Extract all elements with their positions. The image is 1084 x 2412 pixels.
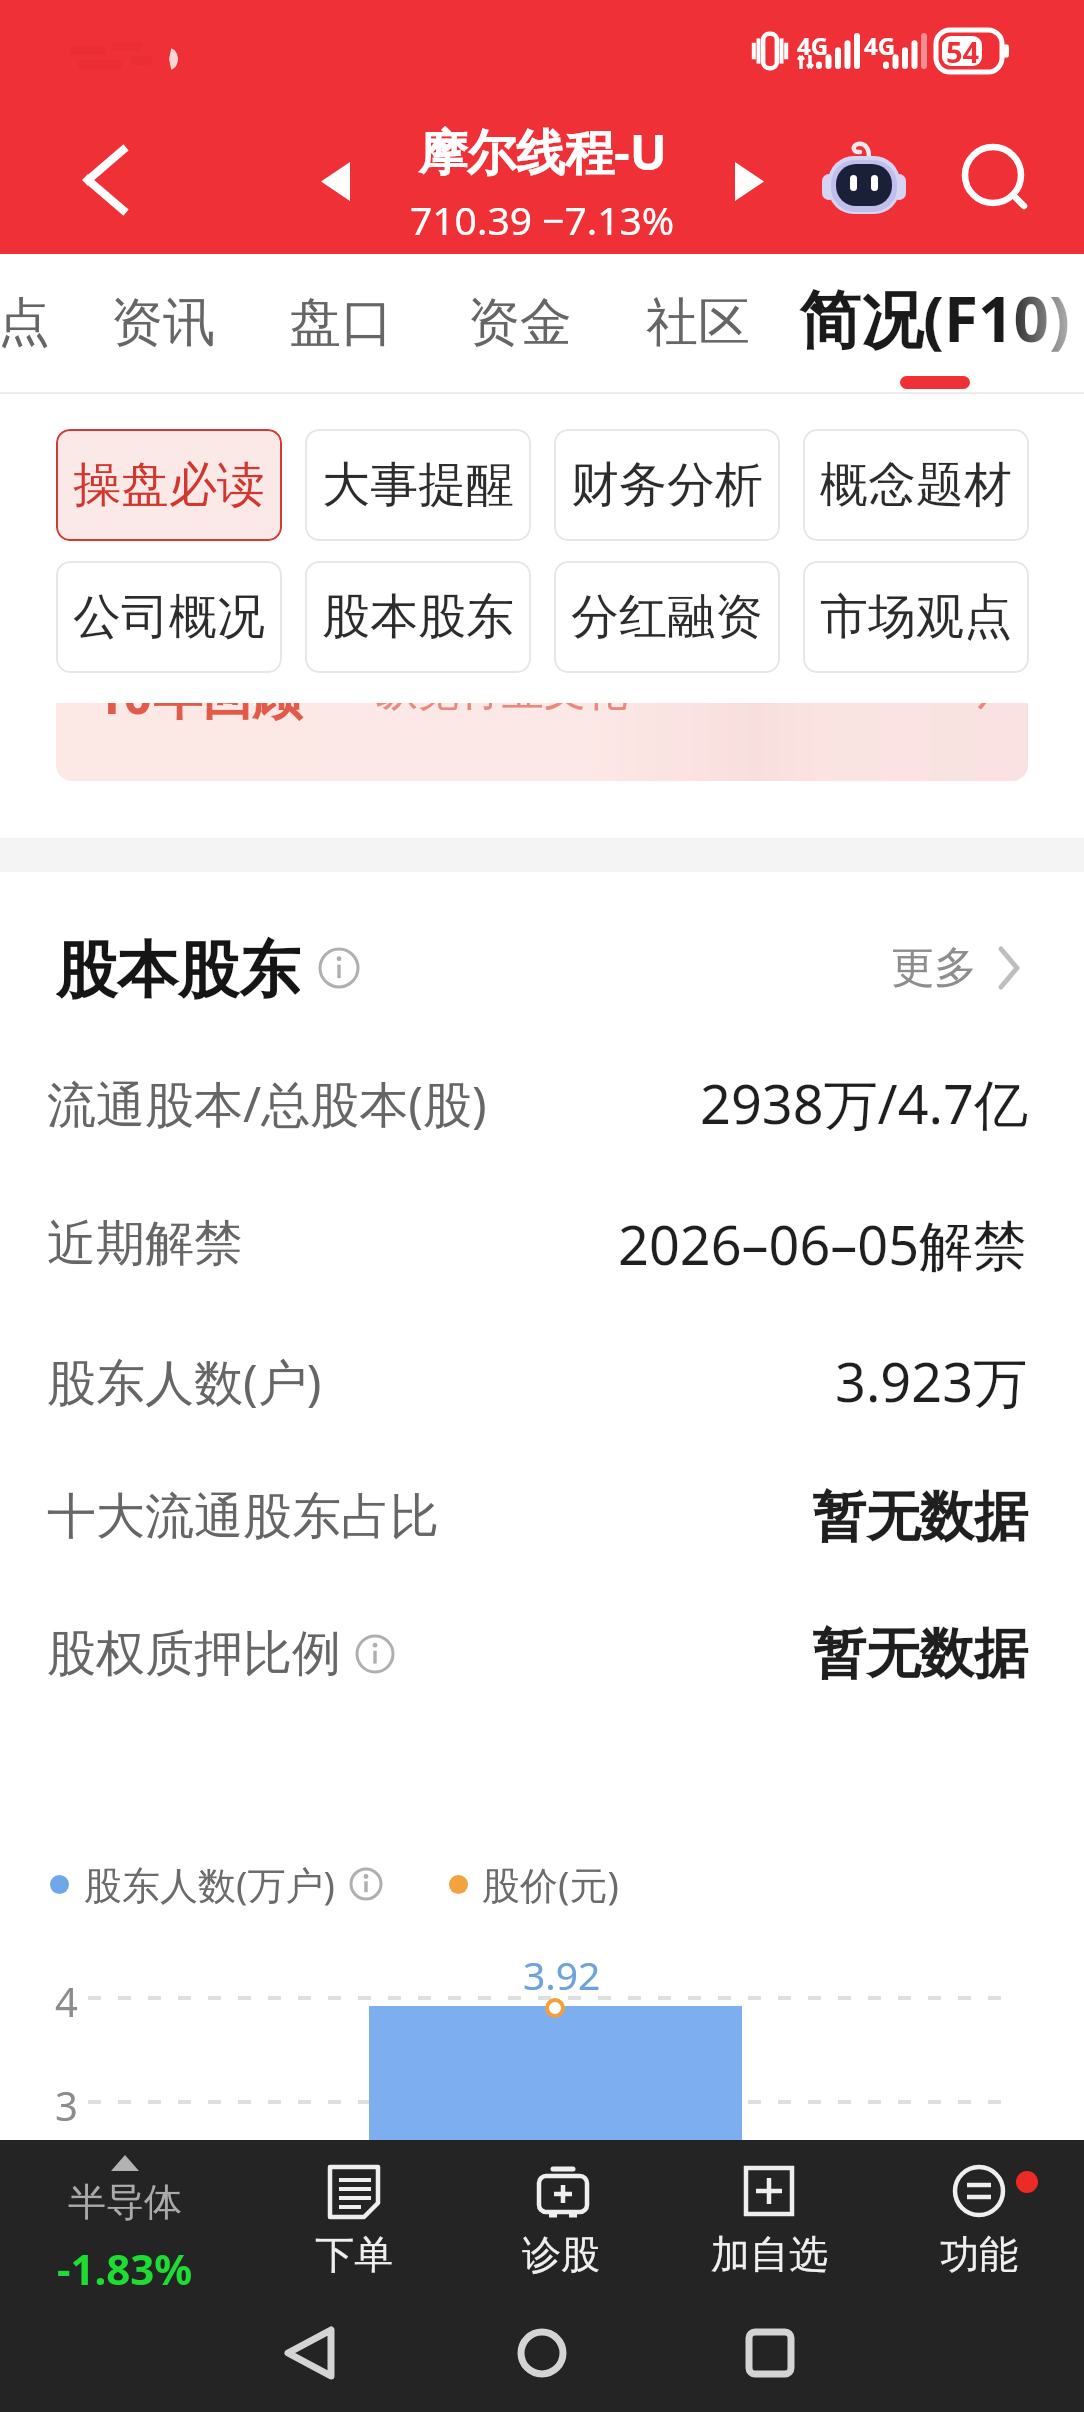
staticText: 10年回顾 <box>95 703 303 729</box>
staticText: 流通股本/总股本(股) <box>47 1070 487 1137</box>
button[interactable]: 10年回顾 <box>56 703 1028 781</box>
staticText: 股东人数(户) <box>47 1348 322 1415</box>
staticText: -1.83% <box>57 2240 193 2297</box>
staticText: 更多 <box>891 941 977 995</box>
staticText: 盘口 <box>289 290 393 356</box>
staticText: 710.39 −7.13% <box>410 193 675 246</box>
staticText: 2938万/4.7亿 <box>700 1066 1028 1140</box>
button[interactable]: 股本股东 <box>305 561 531 673</box>
staticText: 资金 <box>468 290 572 356</box>
staticText: 财务分析 <box>571 455 763 515</box>
staticText: 股本股东 <box>322 587 514 647</box>
button[interactable]: Next stock <box>699 131 799 231</box>
button[interactable]: 操盘必读 <box>56 429 282 541</box>
staticText: 十大流通股东占比 <box>47 1486 439 1548</box>
staticText: 资讯 <box>111 290 215 356</box>
staticText: 摩尔线程-U <box>418 118 667 185</box>
button[interactable]: 股权质押比例 <box>0 1614 1084 1694</box>
button[interactable]: 分红融资 <box>554 561 780 673</box>
staticText: 简况(F10) <box>799 276 1084 356</box>
staticText: 股价(元) <box>482 1858 619 1910</box>
staticText: 纵览行业文化 <box>376 703 628 718</box>
staticText: 3.92 <box>523 1948 601 2001</box>
staticText: 公司概况 <box>73 587 265 647</box>
button[interactable]: Search <box>940 120 1060 240</box>
button[interactable]: 市场观点 <box>803 561 1029 673</box>
staticText: 股东人数(万户) <box>84 1858 335 1910</box>
staticText: 2026–06–05解禁 <box>618 1207 1028 1281</box>
button[interactable]: 概念题材 <box>803 429 1029 541</box>
button[interactable]: Recents <box>720 2303 820 2403</box>
button[interactable]: 大事提醒 <box>305 429 531 541</box>
button[interactable]: AI assistant <box>804 120 924 240</box>
button[interactable]: 社区 <box>628 283 768 363</box>
button[interactable]: 摩尔线程-U <box>0 118 1084 246</box>
staticText: 分红融资 <box>571 587 763 647</box>
staticText: 下单 <box>315 2230 393 2279</box>
staticText: 半导体 <box>68 2178 182 2226</box>
button[interactable]: 流通股本/总股本(股) <box>0 1063 1084 1143</box>
staticText: 热点 <box>0 290 50 356</box>
button[interactable]: 加自选 <box>679 2140 859 2312</box>
button[interactable]: Back <box>45 120 165 240</box>
button[interactable]: Previous stock <box>285 131 385 231</box>
button[interactable]: 十大流通股东占比 <box>0 1477 1084 1557</box>
button[interactable]: 简况(F10) <box>799 276 1084 356</box>
staticText: 暂无数据 <box>812 1483 1028 1551</box>
staticText: 4G <box>864 29 896 62</box>
staticText: 功能 <box>940 2230 1018 2279</box>
button[interactable]: 财务分析 <box>554 429 780 541</box>
staticText: › <box>976 703 992 727</box>
staticText: 暂无数据 <box>812 1620 1028 1688</box>
staticText: 4G <box>797 29 829 62</box>
button[interactable]: Back <box>261 2303 361 2403</box>
staticText: 市场观点 <box>820 587 1012 647</box>
staticText: 54 <box>946 32 980 71</box>
staticText: 股本股东 <box>56 932 300 1004</box>
button[interactable]: 热点 <box>0 283 53 363</box>
button[interactable]: 股东人数(户) <box>0 1341 1084 1421</box>
button[interactable]: 公司概况 <box>56 561 282 673</box>
button[interactable]: 股本股东 <box>0 932 1084 1004</box>
button[interactable]: 功能 <box>889 2140 1069 2312</box>
button[interactable]: 股东人数(万户) <box>50 1858 619 1910</box>
staticText: 3 <box>55 2078 78 2132</box>
staticText: 3.923万 <box>835 1344 1028 1418</box>
button[interactable]: Home <box>492 2303 592 2403</box>
staticText: 近期解禁 <box>47 1213 243 1275</box>
button[interactable]: 盘口 <box>271 283 411 363</box>
staticText: 社区 <box>646 290 750 356</box>
button[interactable]: 下单 <box>264 2140 444 2312</box>
staticText: 概念题材 <box>820 455 1012 515</box>
staticText: 大事提醒 <box>322 455 514 515</box>
staticText: 4 <box>55 1974 78 2028</box>
button[interactable]: 诊股 <box>471 2140 651 2312</box>
button[interactable]: 近期解禁 <box>0 1204 1084 1284</box>
staticText: 诊股 <box>522 2230 600 2279</box>
button[interactable]: 半导体 <box>25 2140 225 2312</box>
staticText: 股权质押比例 <box>47 1623 341 1685</box>
button[interactable]: 资金 <box>450 283 590 363</box>
button[interactable]: 资讯 <box>93 283 233 363</box>
staticText: 加自选 <box>711 2230 828 2279</box>
staticText: 操盘必读 <box>73 455 265 515</box>
